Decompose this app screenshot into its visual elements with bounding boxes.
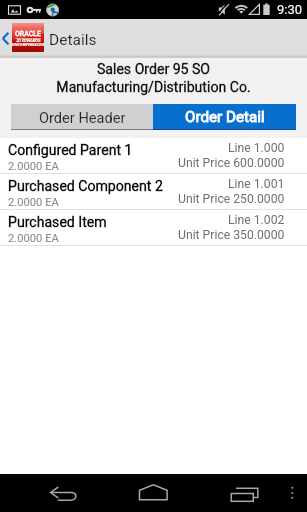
staticText: Unit Price 600.0000 xyxy=(178,156,285,170)
staticText: Purchased Item xyxy=(8,214,107,231)
staticText: Unit Price 250.0000 xyxy=(178,192,285,206)
button[interactable]: Purchased Component 2 xyxy=(0,174,307,209)
button[interactable]: Back xyxy=(0,19,11,58)
button[interactable]: Back xyxy=(38,474,90,512)
staticText: 2.0000 EA xyxy=(8,160,59,173)
staticText: Line 1.002 xyxy=(228,213,285,227)
button[interactable]: Order Header xyxy=(11,104,153,130)
staticText: Details xyxy=(49,31,97,49)
staticText: Order Header xyxy=(39,109,126,126)
staticText: Manufacturing/Distribution Co. xyxy=(0,79,307,96)
staticText: JD EDWARDS xyxy=(16,38,41,43)
button[interactable]: Home xyxy=(128,474,180,512)
staticText: Order Detail xyxy=(185,108,265,126)
staticText: 2.0000 EA xyxy=(8,196,59,209)
staticText: Sales Order 95 SO xyxy=(0,61,307,78)
button[interactable]: Configured Parent 1 xyxy=(0,138,307,173)
staticText: Line 1.001 xyxy=(228,177,285,191)
staticText: ORACLE xyxy=(15,30,41,38)
staticText: 2.0000 EA xyxy=(8,232,59,245)
button[interactable]: Order Detail xyxy=(153,104,296,130)
staticText: Configured Parent 1 xyxy=(8,142,133,159)
staticText: 9:30 xyxy=(277,2,303,17)
staticText: Purchased Component 2 xyxy=(8,178,163,195)
staticText: ENTERPRISEONE xyxy=(12,42,44,47)
staticText: Line 1.000 xyxy=(228,141,285,155)
button[interactable]: Purchased Item xyxy=(0,210,307,245)
button[interactable]: Recent apps xyxy=(218,474,270,512)
staticText: Unit Price 350.0000 xyxy=(178,228,285,242)
button[interactable]: More options xyxy=(282,474,302,512)
